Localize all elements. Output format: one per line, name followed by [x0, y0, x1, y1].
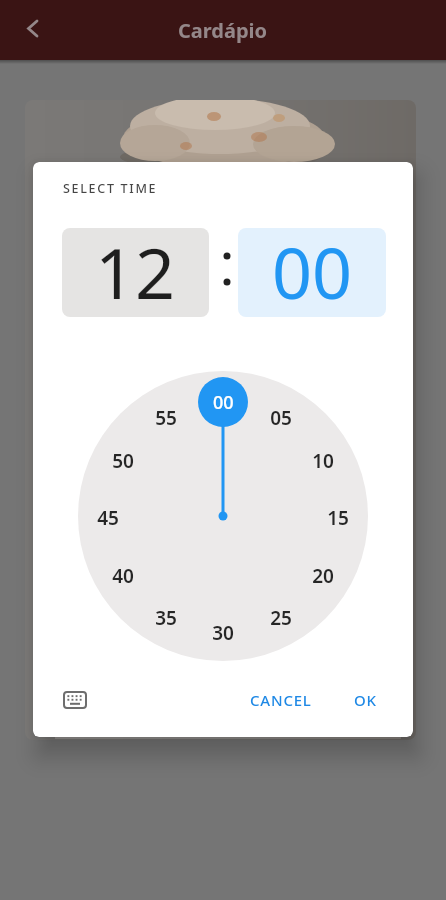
staticText: Cardápio	[178, 17, 268, 44]
button[interactable]	[12, 6, 48, 54]
button[interactable]	[54, 682, 98, 718]
staticText: SELECT TIME	[63, 180, 158, 197]
staticText: CANCEL	[250, 690, 312, 710]
button[interactable]: 00	[238, 228, 386, 317]
staticText: 45	[97, 505, 119, 527]
staticText: 00	[272, 228, 353, 313]
staticText: 50	[112, 448, 134, 470]
staticText: 20	[312, 563, 334, 585]
staticText: 35	[155, 605, 177, 627]
staticText: 25	[270, 605, 292, 627]
staticText: 15	[327, 505, 349, 527]
staticText: 40	[112, 563, 134, 585]
staticText: 30	[212, 620, 234, 642]
button[interactable]: 12	[62, 228, 209, 317]
button[interactable]: CANCEL	[234, 684, 327, 716]
button[interactable]: OK	[334, 684, 396, 716]
staticText: 12	[95, 228, 176, 313]
staticText: 05	[270, 405, 292, 427]
button[interactable]: 00	[198, 377, 248, 427]
staticText: 55	[155, 405, 177, 427]
staticText: 10	[312, 448, 334, 470]
staticText: OK	[354, 690, 377, 710]
staticText: 00	[213, 390, 234, 415]
